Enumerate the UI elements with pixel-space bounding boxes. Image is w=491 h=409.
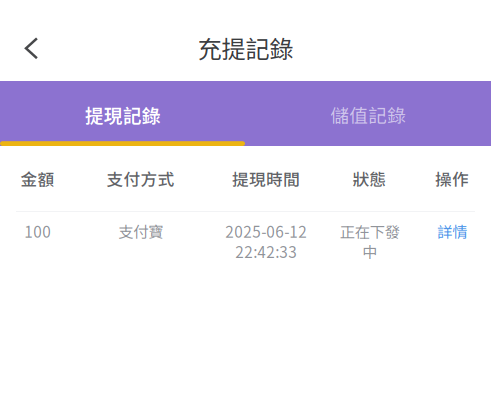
button[interactable]: Back (0, 12, 62, 68)
button[interactable]: 詳情 (413, 220, 491, 242)
button[interactable]: 儲值記錄 (245, 84, 491, 145)
staticText: 支付寶 (118, 220, 163, 242)
staticText: 儲值記錄 (330, 101, 406, 128)
staticText: 100 (24, 220, 51, 242)
button[interactable]: 提現記錄 (0, 84, 245, 145)
staticText: 詳情 (437, 220, 467, 242)
staticText: 操作 (435, 166, 469, 190)
staticText: 狀態 (352, 166, 386, 190)
staticText: 支付方式 (106, 166, 174, 190)
staticText: 提現記錄 (85, 101, 161, 128)
staticText: 充提記錄 (197, 30, 293, 65)
staticText: 2025-06-12 22:42:33 (225, 220, 307, 262)
staticText: 提現時間 (232, 166, 300, 190)
staticText: 正在下發中 (339, 220, 399, 262)
staticText: 金額 (20, 166, 54, 190)
